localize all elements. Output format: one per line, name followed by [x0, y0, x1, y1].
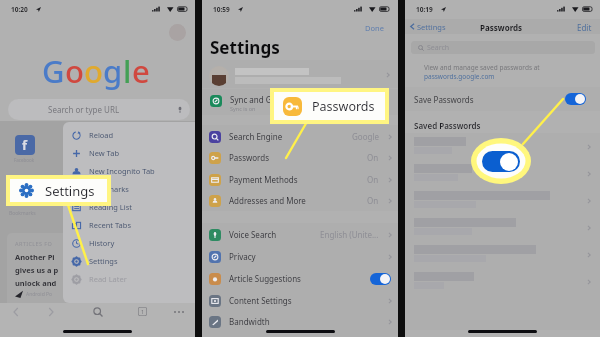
staticText: Bandwidth: [229, 316, 270, 327]
staticText: o: [65, 50, 84, 92]
button[interactable]: History: [63, 234, 195, 252]
staticText: Save Passwords: [414, 94, 474, 105]
button[interactable]: Toggle on: [565, 93, 586, 105]
staticText: Saved Passwords: [414, 120, 481, 131]
button[interactable]: Search: [89, 303, 106, 320]
button[interactable]: Search: [411, 41, 595, 54]
button[interactable]: Content Settings: [202, 290, 398, 311]
staticText: Settings: [89, 256, 118, 266]
staticText: Bookmarks: [9, 210, 36, 217]
staticText: Settings: [210, 36, 280, 59]
staticText: English (Unite...: [320, 229, 379, 240]
staticText: Voice Search: [229, 229, 277, 240]
staticText: Google: [352, 131, 379, 142]
staticText: On: [367, 152, 379, 163]
staticText: Settings: [45, 182, 95, 200]
button[interactable]: [405, 189, 600, 216]
staticText: New Incognito Tab: [89, 166, 155, 176]
staticText: 10:59: [213, 5, 230, 14]
staticText: Passwords: [480, 22, 523, 33]
staticText: History: [89, 238, 115, 248]
staticText: Reading List: [89, 202, 133, 212]
button[interactable]: New Incognito Tab: [63, 162, 195, 180]
staticText: Passwords: [312, 98, 375, 115]
staticText: 10:19: [416, 5, 433, 14]
staticText: Privacy: [229, 251, 256, 262]
staticText: Payment Methods: [229, 174, 298, 185]
staticText: Sync and Goo: [230, 94, 282, 105]
staticText: Bookmarks: [89, 184, 129, 194]
button[interactable]: Back: [8, 304, 24, 320]
staticText: Addresses and More: [229, 195, 306, 206]
button[interactable]: Privacy: [202, 246, 398, 267]
staticText: Read Later: [89, 274, 127, 284]
staticText: ARTICLES FO: [15, 240, 53, 247]
staticText: Sync is on: [230, 105, 256, 112]
button[interactable]: Passwords: [202, 147, 398, 168]
staticText: Settings: [417, 22, 446, 32]
button[interactable]: Reload: [63, 126, 195, 144]
button[interactable]: [405, 216, 600, 243]
staticText: G: [42, 50, 65, 92]
staticText: g: [103, 50, 123, 92]
staticText: Another Pi: [15, 252, 55, 262]
button[interactable]: Settings: [63, 252, 195, 270]
button[interactable]: Search Engine: [202, 126, 398, 147]
button[interactable]: Read Later: [63, 270, 195, 288]
button[interactable]: Done: [365, 23, 384, 33]
button[interactable]: Bandwidth: [202, 311, 398, 332]
button[interactable]: Toggle on: [370, 273, 391, 285]
staticText: New Tab: [89, 148, 120, 158]
button[interactable]: [405, 243, 600, 270]
button[interactable]: [405, 87, 600, 111]
staticText: f: [22, 136, 28, 154]
staticText: o: [84, 50, 103, 92]
button[interactable]: Voice Search: [202, 224, 398, 245]
button[interactable]: [202, 89, 398, 115]
staticText: l: [123, 50, 132, 92]
button[interactable]: Forward: [43, 304, 59, 320]
staticText: e: [132, 50, 150, 92]
button[interactable]: [405, 162, 600, 189]
staticText: Search Engine: [229, 131, 283, 142]
button[interactable]: Addresses and More: [202, 190, 398, 211]
staticText: Search or type URL: [48, 104, 120, 115]
staticText: 10:20: [11, 5, 28, 14]
button[interactable]: Recent Tabs: [63, 216, 195, 234]
staticText: unlock and: [15, 278, 57, 288]
staticText: gives us a p: [15, 265, 59, 275]
button[interactable]: Bookmarks: [63, 180, 195, 198]
staticText: On: [367, 195, 379, 206]
button[interactable]: Account: [169, 24, 186, 41]
button[interactable]: [405, 135, 600, 162]
staticText: Recent Tabs: [89, 220, 131, 230]
button[interactable]: Payment Methods: [202, 169, 398, 190]
staticText: Content Settings: [229, 295, 292, 306]
staticText: passwords.google.com: [424, 72, 495, 81]
staticText: Reload: [89, 130, 114, 140]
button[interactable]: Toggle on: [482, 151, 520, 172]
button[interactable]: Tabs: [134, 303, 151, 320]
staticText: On: [367, 174, 379, 185]
button[interactable]: Settings: [409, 20, 446, 33]
button[interactable]: Edit: [577, 22, 592, 33]
button[interactable]: [202, 60, 398, 88]
staticText: Passwords: [229, 152, 270, 163]
staticText: Search: [427, 43, 450, 53]
staticText: Android Po: [26, 291, 53, 298]
staticText: Facebook: [14, 157, 35, 163]
button[interactable]: [405, 270, 600, 297]
button[interactable]: Reading List: [63, 198, 195, 216]
staticText: View and manage saved passwords at: [424, 63, 540, 72]
button[interactable]: More: [170, 303, 187, 320]
button[interactable]: Article Suggestions: [202, 268, 398, 289]
staticText: 1: [141, 308, 145, 315]
button[interactable]: Search or type URL: [8, 99, 190, 120]
staticText: Article Suggestions: [229, 273, 301, 284]
button[interactable]: New Tab: [63, 144, 195, 162]
